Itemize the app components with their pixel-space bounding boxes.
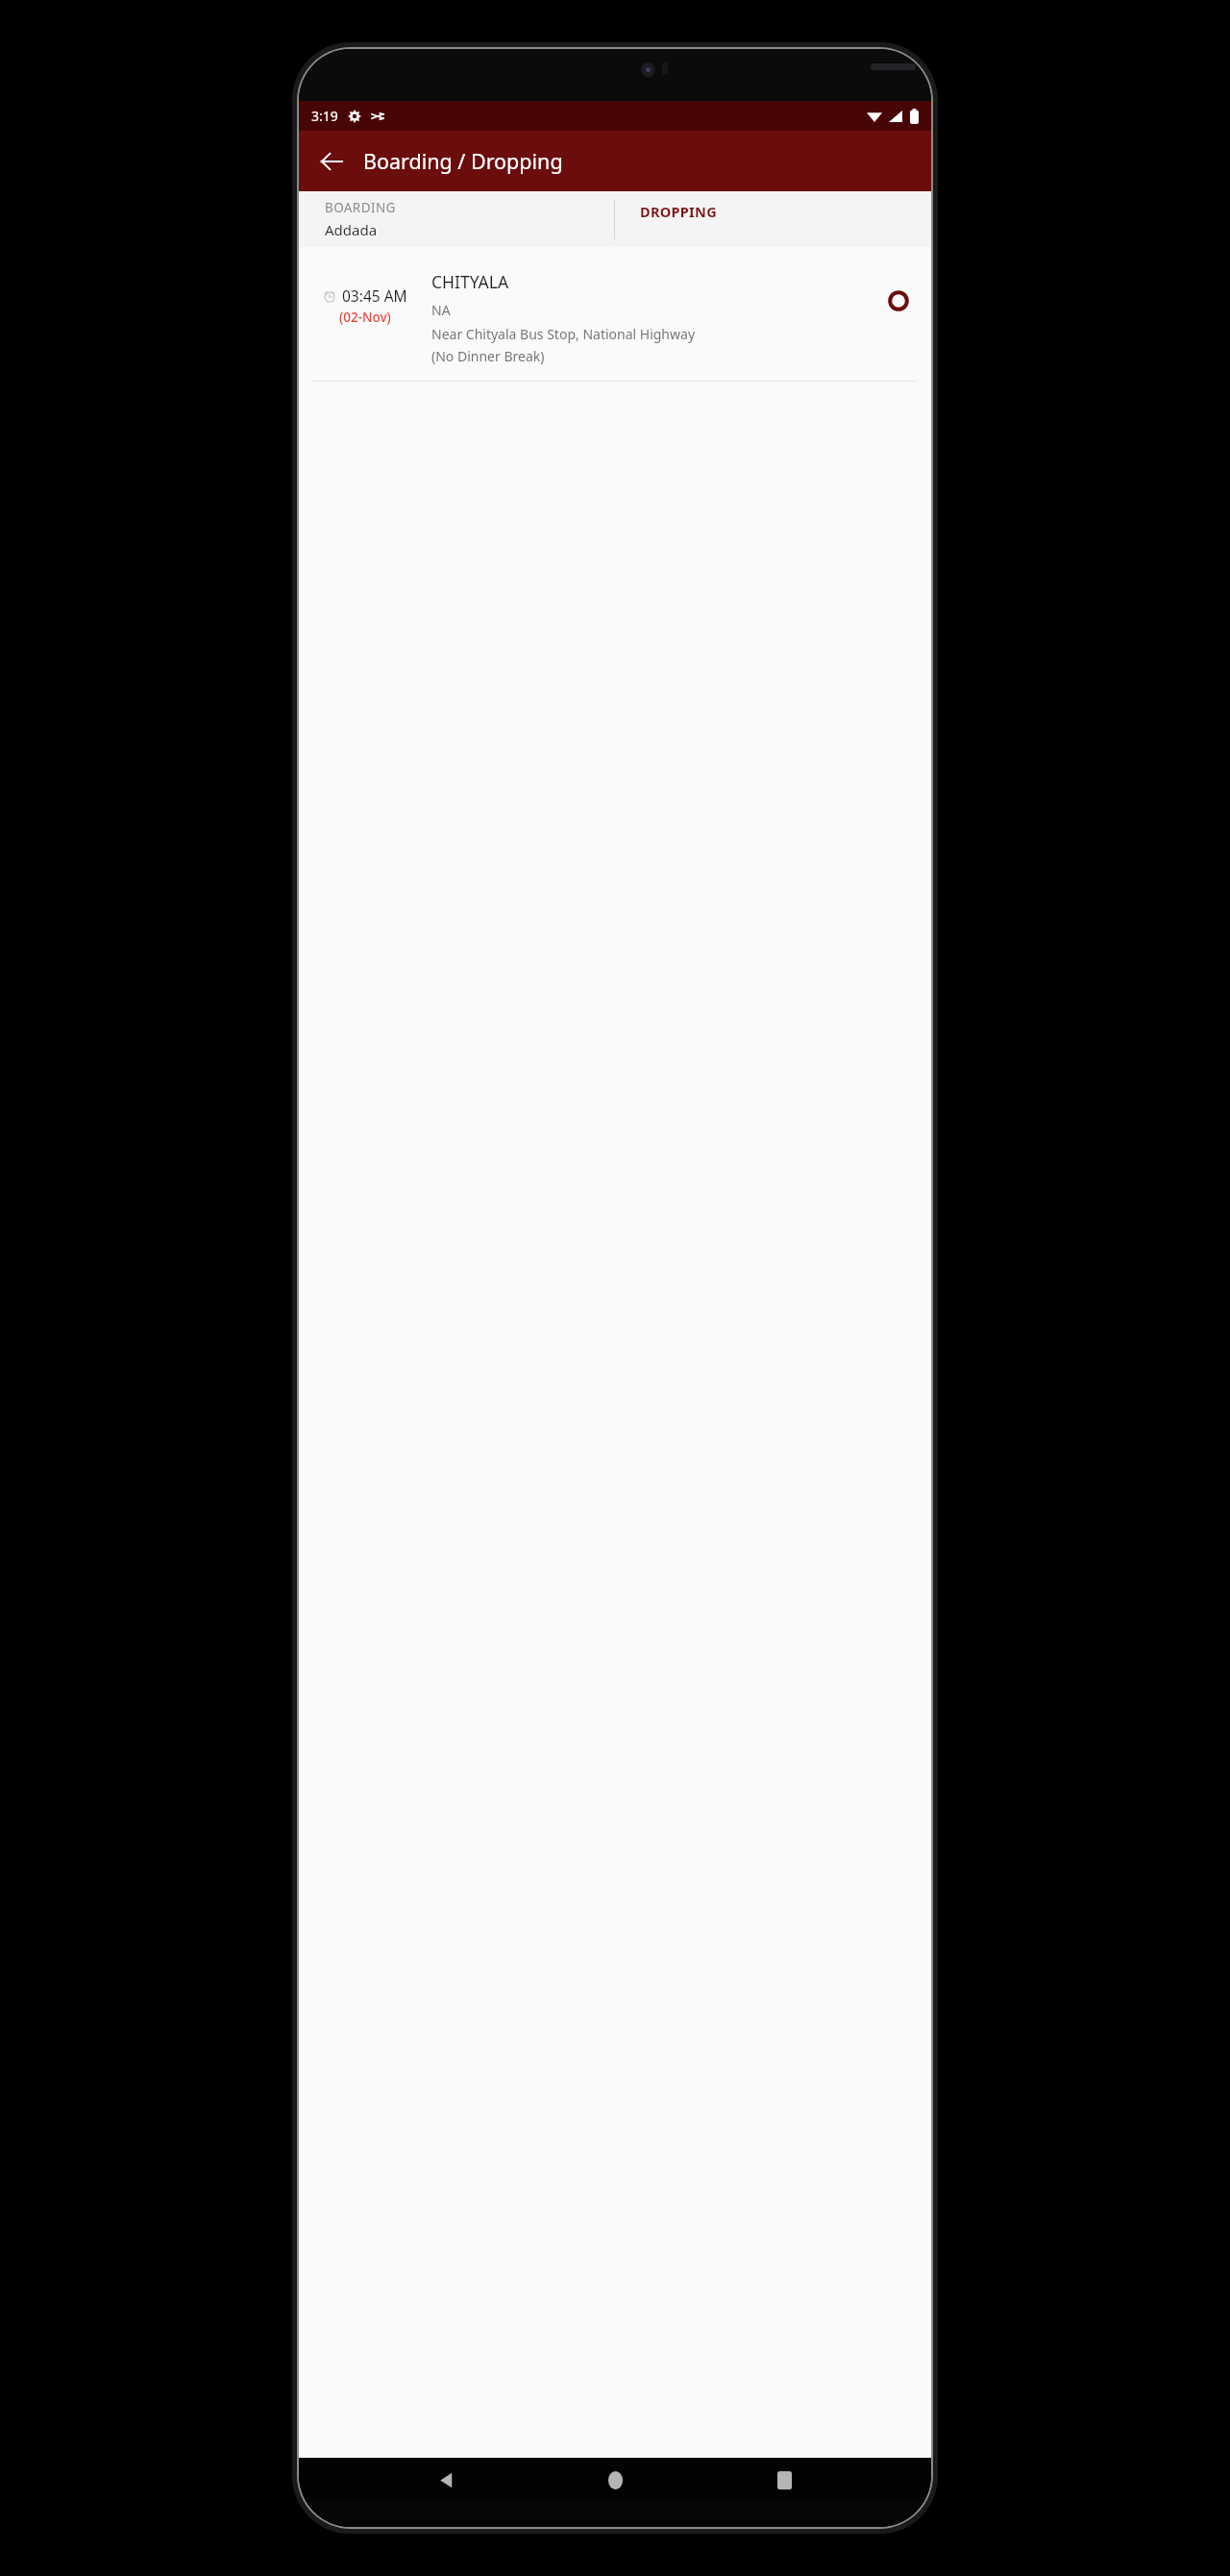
button[interactable]: Back (309, 139, 354, 184)
button[interactable]: Select dropping point (881, 284, 916, 318)
staticText: (No Dinner Break) (431, 347, 545, 365)
staticText: Near Chityala Bus Stop, National Highway (431, 325, 696, 343)
staticText: NA (431, 301, 451, 319)
staticText: 3:19 (311, 107, 338, 125)
button[interactable]: BOARDING (299, 191, 614, 247)
staticText: Boarding / Dropping (363, 147, 563, 175)
button[interactable]: DROPPING (615, 191, 931, 247)
staticText: Addada (325, 220, 378, 239)
staticText: BOARDING (325, 199, 396, 216)
button[interactable]: Recent apps (762, 2458, 806, 2502)
button[interactable]: 03:45 AM (299, 247, 931, 381)
staticText: CHITYALA (431, 270, 509, 293)
button[interactable]: Back (424, 2458, 468, 2502)
staticText: DROPPING (640, 202, 717, 221)
button[interactable]: Home (593, 2458, 637, 2502)
staticText: 03:45 AM (342, 285, 407, 306)
staticText: (02-Nov) (339, 309, 391, 326)
